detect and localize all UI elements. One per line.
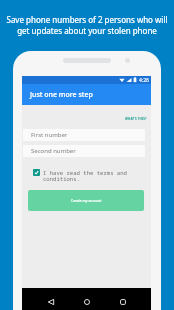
button[interactable]: WHAT'S THIS? xyxy=(125,117,147,121)
staticText: Save phone numbers of 2 persons who will xyxy=(6,14,168,25)
button[interactable]: Just one more step xyxy=(22,84,151,105)
staticText: get updates about your stolen phone xyxy=(17,25,157,36)
staticText: Second number xyxy=(31,147,76,155)
button[interactable]: Home xyxy=(80,295,94,309)
staticText: Just one more step xyxy=(30,90,93,100)
button[interactable]: Back xyxy=(44,295,58,309)
button[interactable]: Create my account xyxy=(28,190,144,211)
staticText: Create my account xyxy=(71,198,102,203)
button[interactable]: First number xyxy=(23,129,145,141)
staticText: 4:26 xyxy=(139,77,149,84)
staticText: First number xyxy=(31,131,68,139)
button[interactable]: I have read the terms and conditions. xyxy=(33,169,127,183)
button[interactable]: Recent apps xyxy=(116,295,130,309)
staticText: I have read the terms and conditions. xyxy=(43,169,127,183)
staticText: WHAT'S THIS? xyxy=(125,117,147,121)
button[interactable]: Second number xyxy=(23,145,145,157)
